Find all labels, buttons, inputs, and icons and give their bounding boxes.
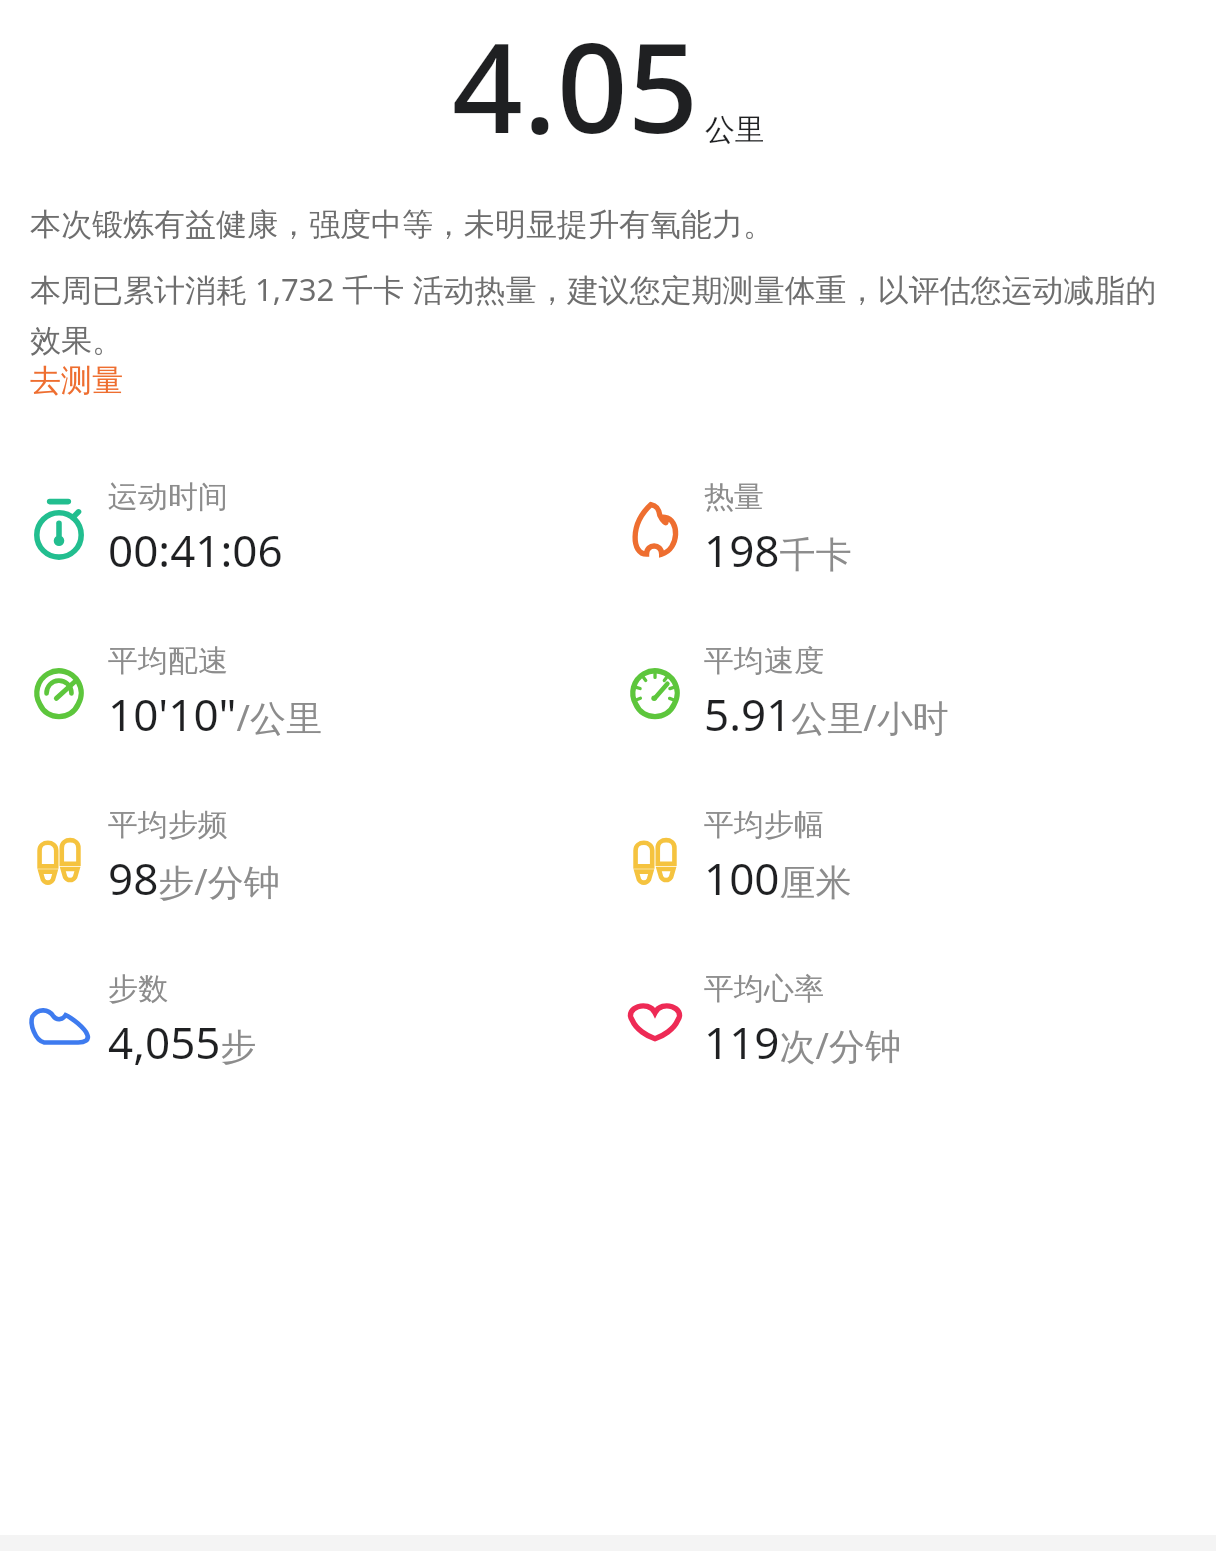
button[interactable]: 平均步频 — [22, 806, 280, 908]
staticText: 平均速度 — [704, 642, 824, 680]
button[interactable]: 去测量 — [30, 361, 123, 400]
staticText: 运动时间 — [108, 478, 228, 516]
staticText: 平均步幅 — [704, 806, 824, 844]
staticText: 平均配速 — [108, 642, 228, 680]
staticText: 100厘米 — [704, 848, 852, 908]
button[interactable]: 热量 — [618, 478, 852, 580]
staticText: 热量 — [704, 478, 764, 516]
staticText: 本次锻炼有益健康，强度中等，未明显提升有氧能力。 — [30, 205, 774, 244]
staticText: 平均心率 — [704, 970, 824, 1008]
staticText: 00:41:06 — [108, 520, 283, 580]
staticText: 119次/分钟 — [704, 1012, 901, 1072]
staticText: 10'10"/公里 — [108, 684, 322, 744]
button[interactable]: 平均速度 — [618, 642, 949, 744]
staticText: 公里 — [705, 111, 765, 149]
button[interactable]: 平均心率 — [618, 970, 901, 1072]
button[interactable]: 运动时间 — [22, 478, 283, 580]
staticText: 5.91公里/小时 — [704, 684, 949, 744]
button[interactable]: 平均配速 — [22, 642, 322, 744]
button[interactable]: 步数 — [22, 970, 257, 1072]
staticText: 4,055步 — [108, 1012, 257, 1072]
staticText: 平均步频 — [108, 806, 228, 844]
staticText: 本周已累计消耗 1,732 千卡 活动热量，建议您定期测量体重，以评估您运动减脂… — [30, 268, 1186, 361]
staticText: 198千卡 — [704, 520, 852, 580]
staticText: 4.05 — [452, 0, 699, 169]
staticText: 98步/分钟 — [108, 848, 280, 908]
staticText: 去测量 — [30, 361, 123, 400]
button[interactable]: 平均步幅 — [618, 806, 852, 908]
staticText: 步数 — [108, 970, 168, 1008]
